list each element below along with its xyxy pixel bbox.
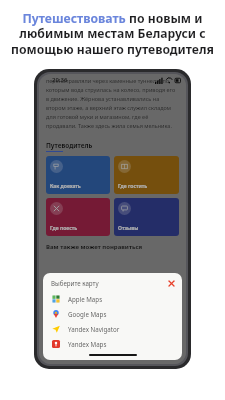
staticText: Где поесть	[50, 225, 78, 232]
staticText: Вам также может понравиться	[46, 243, 143, 251]
button[interactable]: Где гостить	[114, 156, 179, 194]
button[interactable]: Yandex Maps	[43, 336, 182, 351]
button[interactable]: Где поесть	[46, 198, 110, 236]
staticText: Yandex Navigator	[68, 325, 120, 333]
staticText: Путешествовать по новым и любимым местам…	[11, 10, 214, 58]
staticText: Google Maps	[68, 310, 107, 318]
button[interactable]: Yandex Navigator	[43, 321, 182, 336]
button[interactable]: Как доехать	[46, 156, 110, 194]
staticText: Путеводитель	[46, 141, 93, 150]
staticText: Где гостить	[118, 183, 148, 190]
staticText: Yandex Maps	[68, 340, 107, 348]
staticText: Отзывы	[118, 225, 139, 232]
staticText: Как доехать	[50, 183, 81, 190]
button[interactable]: Apple Maps	[43, 291, 182, 306]
button[interactable]: Google Maps	[43, 306, 182, 321]
button[interactable]: Закрыть	[166, 278, 176, 288]
staticText: перенаправляли через каменные туннели, п…	[46, 77, 179, 129]
staticText: Apple Maps	[68, 295, 103, 303]
staticText: 20:36	[52, 76, 68, 84]
button[interactable]: Отзывы	[114, 198, 179, 236]
staticText: Выберите карту	[51, 279, 99, 287]
